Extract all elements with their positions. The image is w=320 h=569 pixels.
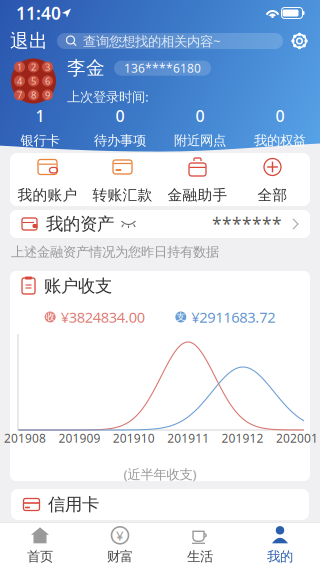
button[interactable]: 退出 — [9, 29, 49, 53]
staticText: 金融助手 — [167, 186, 227, 204]
button[interactable]: 全部 — [235, 153, 310, 206]
staticText: ¥3824834.00 — [61, 307, 145, 327]
button[interactable]: 转账汇款 — [85, 153, 160, 206]
staticText: ¥2911683.72 — [191, 307, 275, 327]
staticText: 1 — [35, 105, 44, 126]
staticText: 账户收支 — [44, 275, 112, 297]
button[interactable]: 信用卡 — [11, 489, 309, 520]
staticText: (近半年收支) — [123, 465, 196, 483]
button[interactable]: 0 — [160, 105, 240, 149]
button[interactable]: ¥ — [80, 523, 160, 567]
button[interactable]: 1 — [0, 105, 80, 149]
staticText: 上述金融资产情况为您昨日持有数据 — [11, 244, 219, 260]
staticText: 上次登录时间: — [67, 88, 149, 105]
staticText: 全部 — [257, 186, 287, 204]
staticText: 生活 — [187, 548, 213, 565]
staticText: 收 — [46, 311, 55, 323]
staticText: 财富 — [107, 548, 133, 565]
button[interactable]: 我的 — [240, 523, 320, 567]
staticText: 查询您想找的相关内容~ — [83, 32, 221, 50]
staticText: 7 — [17, 89, 22, 101]
staticText: 退出 — [10, 29, 48, 52]
staticText: 6 — [45, 75, 50, 87]
staticText: 银行卡 — [20, 132, 59, 149]
staticText: 我的账户 — [17, 186, 77, 204]
button[interactable]: 0 — [240, 105, 320, 149]
staticText: 136****6180 — [124, 60, 201, 76]
staticText: 转账汇款 — [92, 186, 152, 204]
button[interactable]: 我的账户 — [10, 153, 85, 206]
staticText: 3 — [45, 61, 50, 73]
staticText: 0 — [115, 105, 124, 126]
staticText: 我的资产 — [46, 213, 114, 235]
staticText: 201912 — [222, 430, 264, 446]
button[interactable]: 首页 — [0, 523, 80, 567]
staticText: ******* — [212, 212, 282, 235]
staticText: 待办事项 — [94, 132, 146, 149]
staticText: 8 — [31, 89, 36, 101]
button[interactable]: 0 — [80, 105, 160, 149]
staticText: 1 — [17, 61, 22, 73]
staticText: 4 — [17, 75, 22, 87]
staticText: ¥ — [116, 526, 124, 544]
staticText: 我的 — [267, 548, 293, 565]
button[interactable]: 生活 — [160, 523, 240, 567]
staticText: 2 — [31, 61, 36, 73]
staticText: 李金 — [67, 57, 105, 80]
button[interactable]: 设置 — [291, 32, 308, 49]
staticText: 202001 — [276, 430, 318, 446]
button[interactable]: 金融助手 — [160, 153, 235, 206]
staticText: 附近网点 — [174, 132, 226, 149]
staticText: 我的权益 — [254, 132, 306, 149]
staticText: 9 — [45, 89, 50, 101]
button[interactable]: 查询您想找的相关内容~ — [57, 33, 283, 49]
staticText: 支 — [176, 311, 185, 323]
staticText: 201910 — [113, 430, 155, 446]
staticText: 201908 — [4, 430, 46, 446]
staticText: 0 — [195, 105, 204, 126]
staticText: 11:40 — [16, 1, 61, 24]
staticText: 5 — [31, 75, 36, 87]
button[interactable]: 我的资产 — [10, 210, 310, 238]
staticText: 201909 — [58, 430, 100, 446]
staticText: 首页 — [27, 548, 53, 565]
staticText: 201911 — [167, 430, 209, 446]
staticText: 信用卡 — [48, 494, 99, 515]
staticText: 0 — [275, 105, 284, 126]
